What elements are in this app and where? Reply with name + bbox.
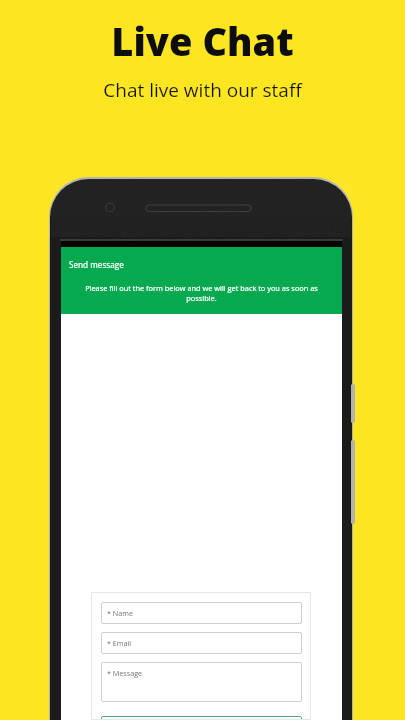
staticText: Chat live with our staff: [103, 77, 302, 103]
button[interactable]: * Name: [101, 602, 302, 624]
button[interactable]: Send message: [61, 247, 342, 314]
button[interactable]: [101, 716, 302, 720]
staticText: * Email: [107, 638, 132, 648]
staticText: Live Chat: [111, 15, 294, 67]
staticText: Please fill out the form below and we wi…: [83, 283, 320, 303]
button[interactable]: * Message: [101, 662, 302, 702]
staticText: * Message: [107, 668, 143, 678]
staticText: * Name: [107, 608, 133, 618]
button[interactable]: * Email: [101, 632, 302, 654]
staticText: Send message: [69, 259, 124, 270]
